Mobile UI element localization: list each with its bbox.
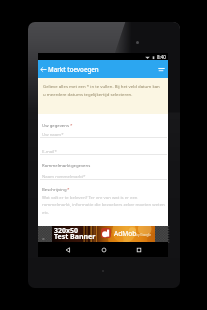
button[interactable]: Opslaan: [155, 60, 168, 78]
button[interactable]: Terug: [38, 60, 49, 78]
button[interactable]: Home: [98, 242, 109, 257]
staticText: Test Banner: [54, 232, 96, 242]
staticText: AdMob: [114, 229, 137, 238]
staticText: 320x50: [54, 226, 79, 236]
button[interactable]: Advertentie: [52, 226, 155, 243]
button[interactable]: Naam rommelmarkt*: [38, 171, 168, 182]
staticText: Uw gegevens: [42, 122, 70, 128]
staticText: Beschrijving: [42, 186, 67, 192]
staticText: Naam rommelmarkt*: [42, 173, 86, 179]
staticText: *: [67, 186, 70, 192]
staticText: Markt toevoegen: [48, 65, 99, 73]
button[interactable]: Terug: [62, 242, 73, 257]
staticText: *: [70, 122, 73, 128]
staticText: E-mail*: [42, 148, 57, 154]
staticText: by Google: [136, 233, 152, 237]
staticText: Uw naam*: [42, 131, 64, 137]
staticText: Rommelmarktgegevens: [42, 162, 91, 168]
button[interactable]: Recente apps: [133, 242, 144, 257]
button[interactable]: Uw naam*: [38, 129, 168, 140]
button[interactable]: E-mail*: [38, 146, 168, 157]
staticText: 8:40: [157, 54, 166, 60]
staticText: Wat valt er te beleven? Ter ere van wat …: [42, 194, 166, 215]
staticText: Gelieve alles met een * in te vullen. Bi…: [43, 83, 161, 97]
